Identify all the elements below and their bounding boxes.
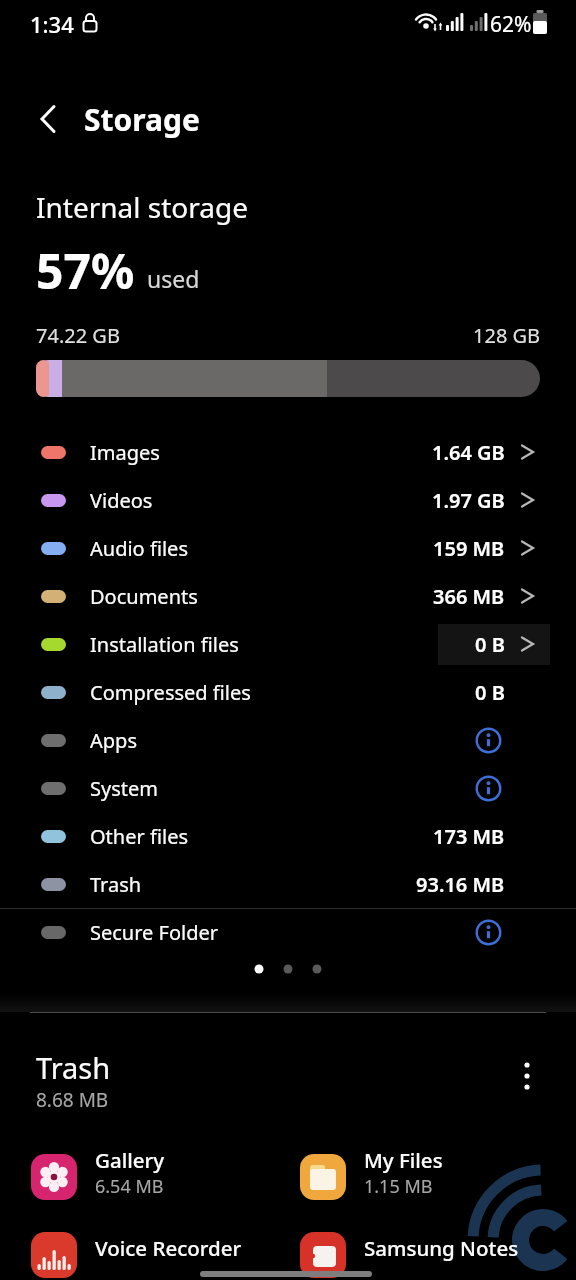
staticText: Installation files <box>90 631 239 658</box>
staticText: Voice Recorder <box>95 1234 242 1262</box>
button[interactable]: Apps <box>0 716 576 764</box>
button[interactable]: Images <box>0 428 576 476</box>
staticText: 128 GB <box>473 322 541 349</box>
staticText: 0 B <box>475 631 505 658</box>
button[interactable]: Gallery <box>31 1150 281 1203</box>
staticText: Documents <box>90 583 198 610</box>
staticText: Gallery <box>95 1146 164 1174</box>
button[interactable] <box>505 1056 549 1100</box>
button[interactable]: Trash <box>0 860 576 908</box>
staticText: Compressed files <box>90 679 251 706</box>
staticText: 74.22 GB <box>36 322 120 349</box>
staticText: 1.64 GB <box>432 439 505 466</box>
staticText: 0 B <box>475 679 505 706</box>
button[interactable]: Voice Recorder <box>31 1232 281 1278</box>
staticText: My Files <box>364 1146 443 1174</box>
staticText: Internal storage <box>36 188 248 226</box>
button[interactable]: Installation files <box>0 620 576 668</box>
button[interactable]: System <box>0 764 576 812</box>
button[interactable]: Secure Folder <box>0 908 576 956</box>
staticText: Trash <box>90 871 142 898</box>
button[interactable]: Compressed files <box>0 668 576 716</box>
staticText: 8.68 MB <box>36 1087 109 1113</box>
staticText: used <box>147 263 200 294</box>
staticText: 1.15 MB <box>364 1174 433 1199</box>
staticText: Samsung Notes <box>364 1234 519 1262</box>
staticText: Trash <box>36 1048 111 1087</box>
staticText: 6.54 MB <box>95 1174 164 1199</box>
staticText: 1.97 GB <box>432 487 505 514</box>
staticText: Images <box>90 439 160 466</box>
button[interactable] <box>24 95 72 143</box>
button[interactable]: Trash <box>36 1048 111 1113</box>
staticText: Secure Folder <box>90 919 219 946</box>
button[interactable]: Documents <box>0 572 576 620</box>
staticText: 57% <box>36 238 135 303</box>
staticText: 93.16 MB <box>416 871 505 898</box>
staticText: 62% <box>490 10 532 39</box>
staticText: Videos <box>90 487 153 514</box>
button[interactable]: Samsung Notes <box>300 1232 550 1278</box>
staticText: Storage <box>84 99 200 140</box>
staticText: 1:34 <box>30 9 74 39</box>
staticText: Apps <box>90 727 137 754</box>
button[interactable]: Videos <box>0 476 576 524</box>
staticText: 173 MB <box>433 823 505 850</box>
staticText: System <box>90 775 158 802</box>
button[interactable]: Audio files <box>0 524 576 572</box>
staticText: Audio files <box>90 535 188 562</box>
staticText: 159 MB <box>433 535 505 562</box>
staticText: Other files <box>90 823 188 850</box>
staticText: 366 MB <box>433 583 505 610</box>
button[interactable]: Other files <box>0 812 576 860</box>
button[interactable]: My Files <box>300 1150 550 1203</box>
